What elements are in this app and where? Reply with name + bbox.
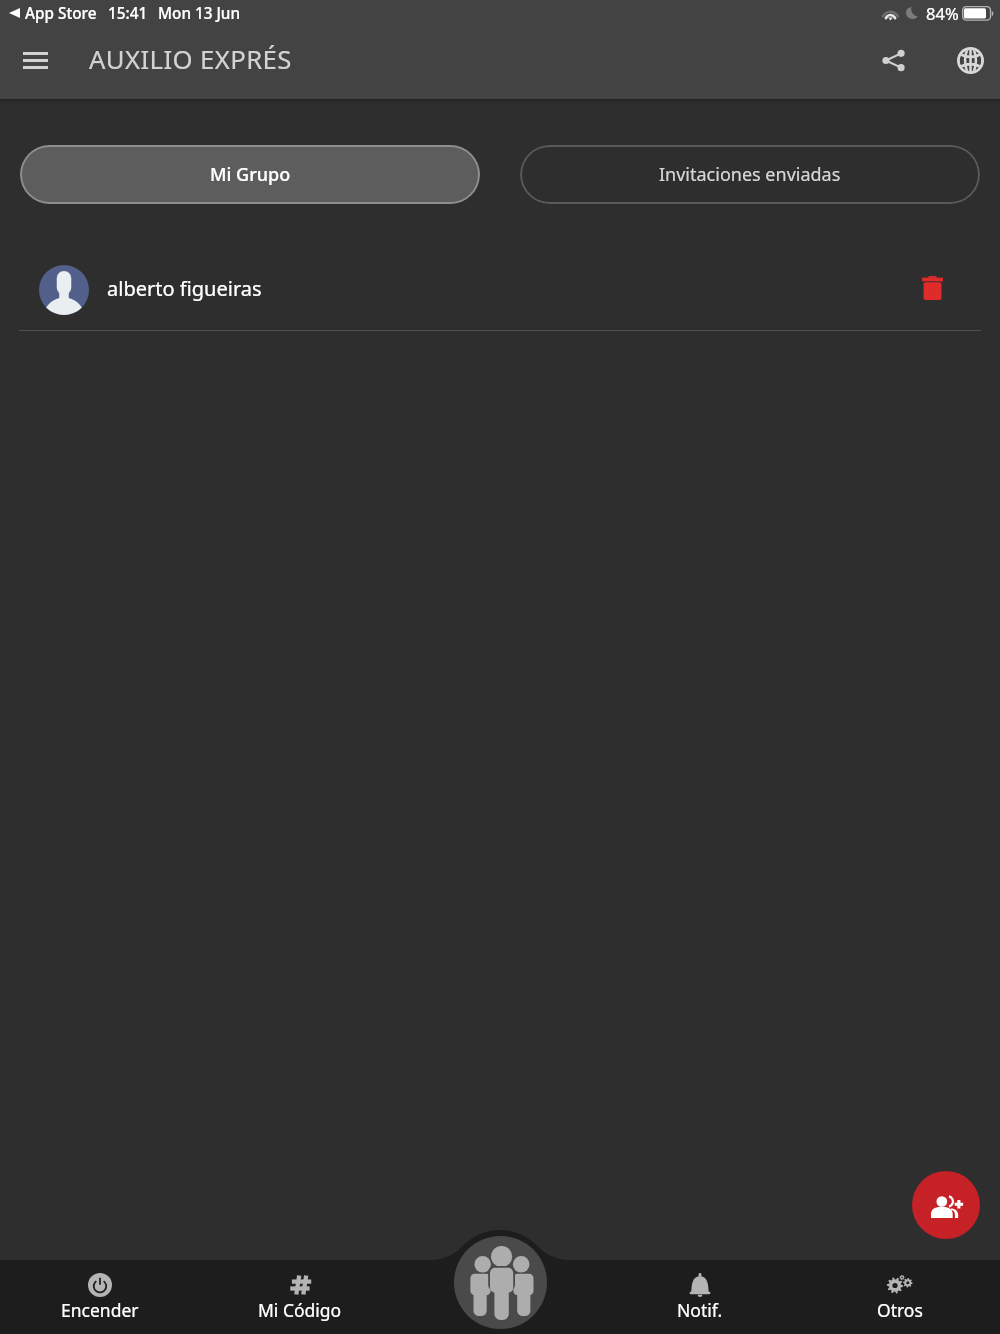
- button[interactable]: Notif.: [600, 1260, 800, 1334]
- staticText: 15:41: [108, 3, 148, 24]
- button[interactable]: Language: [944, 34, 996, 86]
- staticText: Otros: [877, 1298, 923, 1322]
- button[interactable]: Delete: [910, 266, 954, 310]
- staticText: Mi Código: [258, 1298, 342, 1322]
- button[interactable]: Mi Grupo: [20, 145, 480, 204]
- staticText: Notif.: [677, 1298, 723, 1322]
- staticText: Mi Grupo: [210, 162, 291, 187]
- button[interactable]: Encender: [0, 1260, 200, 1334]
- staticText: Mon 13 Jun: [158, 3, 241, 24]
- button[interactable]: Invitaciones enviadas: [520, 145, 980, 204]
- staticText: Encender: [61, 1298, 139, 1322]
- staticText: AUXILIO EXPRÉS: [89, 42, 292, 77]
- button[interactable]: Mi Código: [200, 1260, 400, 1334]
- button[interactable]: Menu: [9, 34, 61, 86]
- button[interactable]: Add member: [912, 1171, 980, 1239]
- staticText: App Store: [25, 3, 97, 24]
- button[interactable]: Otros: [800, 1260, 1000, 1334]
- staticText: 84%: [926, 2, 959, 24]
- staticText: alberto figueiras: [107, 275, 262, 302]
- button[interactable]: Share: [867, 34, 919, 86]
- button[interactable]: My group: [454, 1236, 547, 1329]
- button[interactable]: alberto figueiras: [0, 246, 1000, 330]
- staticText: Invitaciones enviadas: [659, 162, 841, 187]
